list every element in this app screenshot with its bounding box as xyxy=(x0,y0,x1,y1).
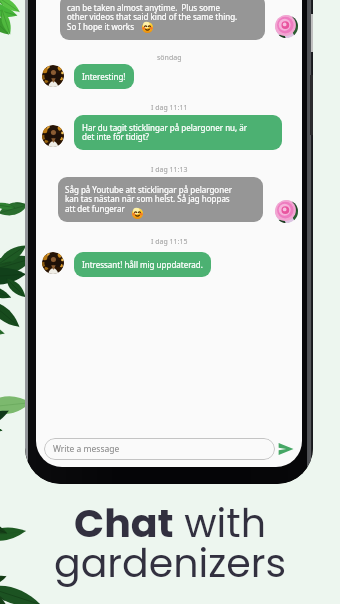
staticText: Write a message xyxy=(53,443,120,455)
button[interactable]: Såg på Youtube att sticklingar på pelarg… xyxy=(58,177,263,222)
staticText: Har du tagit sticklingar på pelargoner n… xyxy=(82,122,248,143)
button[interactable]: Har du tagit sticklingar på pelargoner n… xyxy=(74,115,282,150)
staticText: can be taken almost anytime. Plus some o… xyxy=(67,2,238,33)
staticText: I dag 11:11 xyxy=(151,103,188,113)
button[interactable]: Intressant! håll mig uppdaterad. xyxy=(74,252,211,277)
staticText: Interesting! xyxy=(82,71,126,82)
staticText: Intressant! håll mig uppdaterad. xyxy=(82,259,203,270)
button[interactable]: Send xyxy=(275,438,297,460)
staticText: I dag 11:13 xyxy=(151,165,188,175)
staticText: I dag 11:15 xyxy=(151,237,188,247)
staticText: söndag xyxy=(157,53,182,63)
staticText: Såg på Youtube att sticklingar på pelarg… xyxy=(65,184,232,215)
staticText: Chat with gardenizers xyxy=(0,496,340,591)
button[interactable]: Interesting! xyxy=(74,64,134,89)
button[interactable]: Write a message xyxy=(44,438,275,460)
